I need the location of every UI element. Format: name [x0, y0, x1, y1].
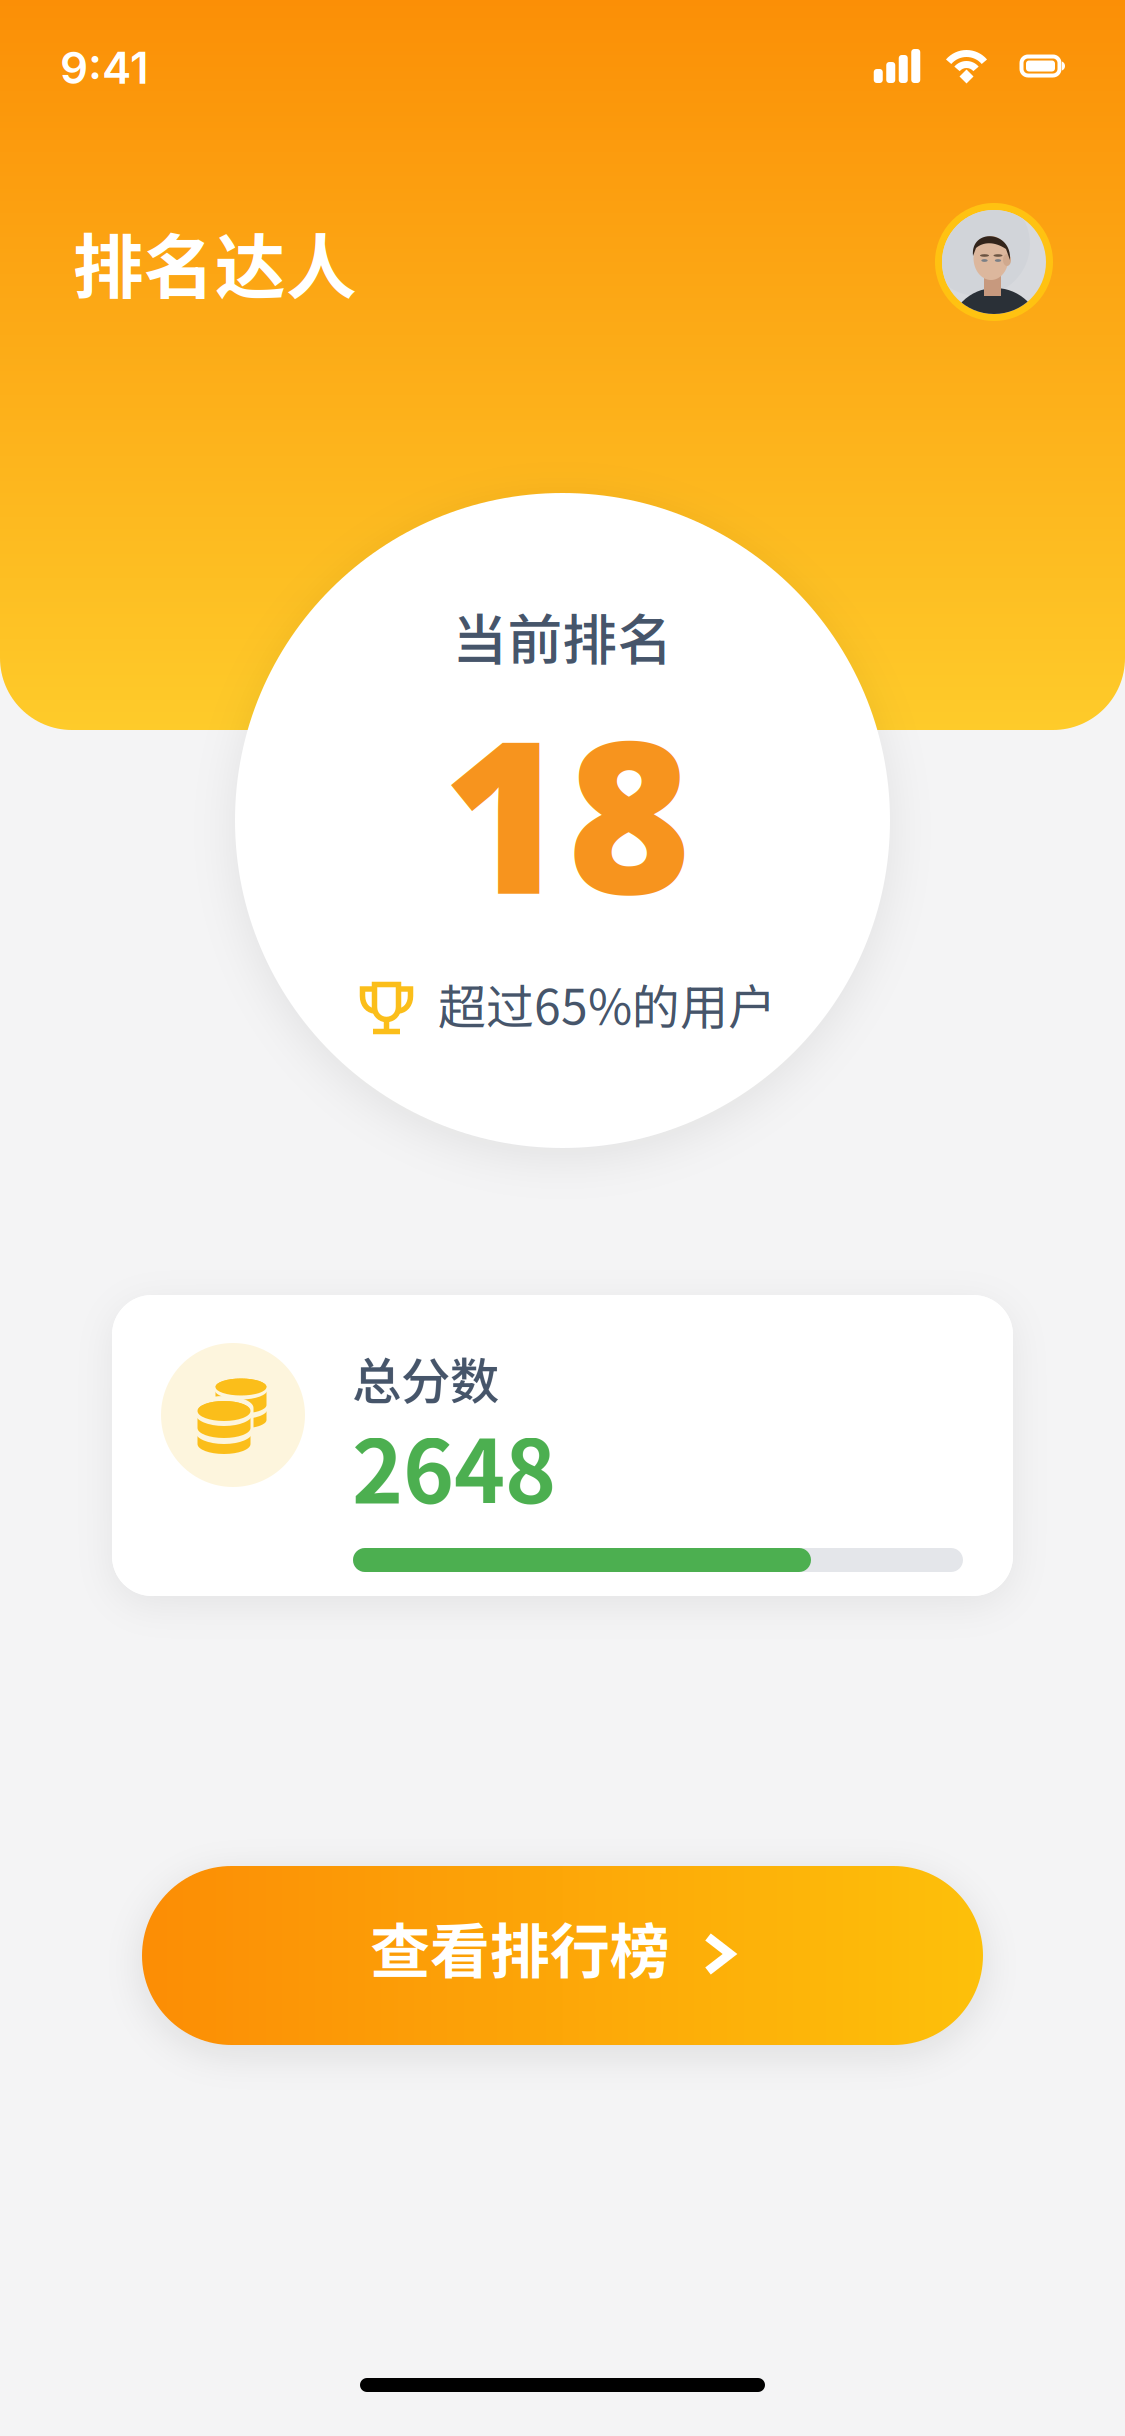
staticText: 18 [442, 668, 690, 955]
staticText: 超过65%的用户 [438, 969, 776, 1038]
staticText: 总分数 [352, 1342, 499, 1413]
staticText: 2648 [352, 1403, 556, 1528]
staticText: 排名达人 [73, 211, 357, 313]
staticText: 距离下一名还差 120 分 [353, 1583, 768, 1643]
staticText: 当前排名 [452, 596, 672, 676]
staticText: 查看排行榜 [370, 1904, 670, 1991]
button[interactable]: 查看排行榜 [142, 1866, 983, 2045]
staticText: 9:41 [60, 41, 149, 94]
button[interactable]: Profile [935, 203, 1053, 321]
